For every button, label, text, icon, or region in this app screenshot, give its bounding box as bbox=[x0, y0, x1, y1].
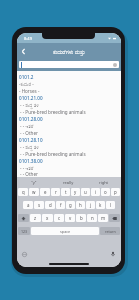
button[interactable]: m bbox=[98, 214, 108, 222]
button[interactable]: - Horses - bbox=[19, 87, 121, 94]
button[interactable]: return bbox=[100, 227, 120, 235]
button[interactable]: a bbox=[23, 201, 33, 209]
staticText: - - Other bbox=[20, 171, 38, 177]
staticText: u bbox=[84, 189, 87, 195]
button[interactable]: Voice input bbox=[109, 250, 117, 258]
button[interactable]: l bbox=[106, 201, 115, 209]
button[interactable]: really bbox=[51, 177, 86, 188]
staticText: b bbox=[80, 215, 83, 221]
staticText: o bbox=[104, 189, 107, 195]
staticText: t bbox=[65, 189, 67, 195]
staticText: n bbox=[91, 215, 94, 221]
staticText: - - Pure-bred breeding animals bbox=[20, 109, 86, 115]
button[interactable]: "y" bbox=[17, 177, 51, 188]
staticText: v bbox=[69, 215, 72, 221]
staticText: c bbox=[58, 215, 61, 221]
button[interactable]: p bbox=[111, 188, 120, 196]
button[interactable]: -ಕುದುರೆ - bbox=[19, 80, 121, 87]
button[interactable]: f bbox=[56, 201, 65, 209]
staticText: - - ಇತರೆ bbox=[20, 123, 34, 129]
staticText: ಕುದುರೆಗಳು ಮತ್ತು bbox=[53, 48, 86, 55]
button[interactable]: 0101.2 bbox=[19, 73, 121, 80]
button[interactable]: - - ಇತರೆ bbox=[19, 122, 121, 129]
button[interactable]: Clear bbox=[19, 61, 119, 68]
button[interactable]: h bbox=[76, 201, 85, 209]
staticText: - - Pure-bred breeding animals bbox=[20, 151, 86, 157]
other: Clear bbox=[113, 63, 117, 67]
staticText: z bbox=[34, 215, 37, 221]
staticText: - - ಶುದ್ಧ ತಳಿ bbox=[20, 144, 39, 150]
button[interactable]: t bbox=[61, 188, 70, 196]
button[interactable]: s bbox=[34, 201, 44, 209]
button[interactable]: - - Other bbox=[19, 129, 121, 136]
button[interactable]: 0101.21.00 bbox=[19, 94, 121, 101]
button[interactable]: 0101.28.00 bbox=[19, 115, 121, 122]
button[interactable]: w bbox=[29, 188, 39, 196]
staticText: h bbox=[79, 202, 82, 208]
button[interactable]: 123 bbox=[18, 227, 30, 235]
button[interactable]: g bbox=[66, 201, 75, 209]
staticText: return bbox=[105, 229, 116, 234]
button[interactable]: o bbox=[101, 188, 110, 196]
staticText: - Horses - bbox=[19, 88, 40, 94]
button[interactable]: b bbox=[76, 214, 86, 222]
button[interactable]: - - ಇತರೆ bbox=[19, 164, 121, 171]
button[interactable]: - - Other bbox=[19, 171, 121, 177]
button[interactable]: - - Pure-bred breeding animals bbox=[19, 150, 121, 157]
staticText: "y" bbox=[31, 180, 37, 185]
button[interactable]: - - ಶುದ್ಧ ತಳಿ bbox=[19, 101, 121, 108]
button[interactable]: c bbox=[54, 214, 64, 222]
button[interactable]: Backspace bbox=[109, 214, 120, 222]
staticText: e bbox=[44, 189, 47, 195]
staticText: 0101.21.00 bbox=[19, 95, 43, 101]
staticText: q bbox=[22, 189, 25, 195]
staticText: p bbox=[114, 189, 117, 195]
button[interactable]: - - Pure-bred breeding animals bbox=[19, 108, 121, 115]
staticText: f bbox=[60, 202, 62, 208]
button[interactable]: i bbox=[91, 188, 100, 196]
button[interactable]: r bbox=[51, 188, 60, 196]
button[interactable]: d bbox=[45, 201, 55, 209]
staticText: k bbox=[99, 202, 102, 208]
button[interactable]: v bbox=[65, 214, 75, 222]
staticText: 0101.2 bbox=[19, 74, 34, 80]
staticText: x bbox=[46, 215, 49, 221]
staticText: a bbox=[27, 202, 30, 208]
staticText: - - ಶುದ್ಧ ತಳಿ bbox=[20, 102, 39, 108]
button[interactable]: y bbox=[71, 188, 80, 196]
button[interactable]: u bbox=[81, 188, 90, 196]
button[interactable]: 0101.38.00 bbox=[19, 157, 121, 164]
button[interactable]: n bbox=[87, 214, 97, 222]
staticText: 8:49 bbox=[24, 36, 32, 41]
button[interactable]: space bbox=[31, 227, 99, 235]
button[interactable]: right bbox=[86, 177, 121, 188]
button[interactable]: 0101.28.10 bbox=[19, 136, 121, 143]
staticText: - - ಇತರೆ bbox=[20, 165, 34, 171]
staticText: m bbox=[101, 215, 106, 221]
staticText: w bbox=[32, 189, 36, 195]
staticText: y bbox=[74, 189, 77, 195]
button[interactable]: j bbox=[86, 201, 95, 209]
staticText: right bbox=[99, 180, 109, 185]
staticText: g bbox=[69, 202, 72, 208]
button[interactable]: k bbox=[96, 201, 105, 209]
staticText: d bbox=[49, 202, 52, 208]
staticText: r bbox=[55, 189, 57, 195]
staticText: i bbox=[95, 189, 97, 195]
staticText: 0101.28.10 bbox=[19, 137, 43, 143]
button[interactable]: z bbox=[30, 214, 41, 222]
button[interactable]: Back bbox=[17, 45, 30, 58]
staticText: 123 bbox=[21, 229, 28, 234]
staticText: 0101.38.00 bbox=[19, 158, 43, 164]
staticText: j bbox=[90, 202, 92, 208]
staticText: space bbox=[60, 229, 71, 234]
button[interactable]: x bbox=[42, 214, 53, 222]
staticText: s bbox=[38, 202, 41, 208]
button[interactable]: q bbox=[18, 188, 28, 196]
button[interactable]: e bbox=[40, 188, 50, 196]
staticText: -ಕುದುರೆ - bbox=[19, 81, 34, 87]
button[interactable]: Shift bbox=[18, 214, 29, 222]
button[interactable]: - - ಶುದ್ಧ ತಳಿ bbox=[19, 143, 121, 150]
staticText: - - Other bbox=[20, 130, 38, 136]
button[interactable]: Emoji keyboard bbox=[20, 250, 29, 259]
